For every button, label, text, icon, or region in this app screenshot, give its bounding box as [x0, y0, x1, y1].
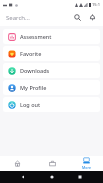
button[interactable]: Assessment	[3, 29, 100, 44]
staticText: Downloads	[20, 67, 50, 74]
button[interactable]: Downloads	[3, 63, 100, 78]
button[interactable]: Log out	[3, 97, 100, 112]
button[interactable]: Work	[35, 156, 69, 171]
staticText: Assessment	[20, 33, 52, 40]
button[interactable]: Search	[71, 11, 84, 24]
button[interactable]: Recents	[74, 171, 86, 183]
button[interactable]: Home	[0, 156, 35, 171]
button[interactable]: Home	[46, 171, 58, 183]
button[interactable]: Notifications	[86, 11, 99, 24]
staticText: My Profile	[20, 84, 47, 91]
staticText: Log out	[20, 101, 41, 108]
button[interactable]: Favorite	[3, 46, 100, 61]
staticText: Favorite	[20, 50, 42, 57]
button[interactable]: More	[69, 156, 103, 171]
button[interactable]: My Profile	[3, 80, 100, 95]
staticText: 15:1	[92, 2, 100, 7]
button[interactable]: Back	[17, 171, 29, 183]
staticText: More	[82, 165, 91, 170]
staticText: Search...	[6, 14, 30, 22]
button[interactable]: Search...	[4, 11, 71, 24]
